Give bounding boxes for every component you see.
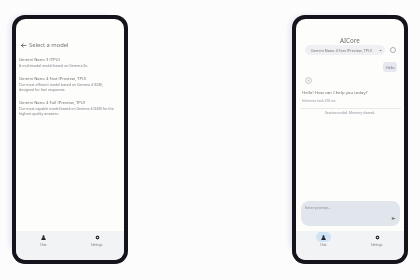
staticText: Hello! How can I help you today? (302, 89, 368, 95)
staticText: Inference took 418 ms (302, 99, 336, 103)
staticText: Gemini Nano 4 Fast (Preview, TPU) (19, 76, 87, 82)
button[interactable]: Settings (350, 231, 404, 260)
staticText: Chat (320, 243, 327, 247)
staticText: Session ended. Memory cleared. (325, 110, 376, 114)
staticText: AICore (340, 36, 360, 44)
staticText: Settings (91, 243, 103, 247)
staticText: Enter prompt… (305, 205, 332, 210)
staticText: Gemini Nano 3 (TPU) (19, 57, 60, 63)
button[interactable]: Account (390, 47, 396, 53)
button[interactable]: Chat (16, 231, 70, 260)
staticText: Gemini Nano 4 Fast (Preview, TPU) (311, 48, 372, 53)
button[interactable]: Gemini Nano 4 Full (Preview, TPU) (16, 96, 124, 120)
staticText: Chat (40, 243, 47, 247)
staticText: Select a model (29, 41, 69, 49)
button[interactable]: Enter prompt… (301, 201, 400, 226)
staticText: Our most efficient model based on Gemma … (19, 82, 119, 92)
staticText: Our most capable model based on Gemma 4 … (19, 106, 119, 116)
button[interactable]: Back (16, 39, 124, 51)
staticText: Gemini Nano 4 Full (Preview, TPU) (19, 100, 86, 106)
button[interactable]: Settings (70, 231, 124, 260)
button[interactable]: Gemini Nano 4 Fast (Preview, TPU) (16, 72, 124, 96)
staticText: Settings (371, 243, 383, 247)
button[interactable]: Send (391, 216, 396, 221)
button[interactable]: Gemini Nano 4 Fast (Preview, TPU) (305, 45, 385, 55)
staticText: A multimodal model based on Gemma 3n. (19, 63, 89, 68)
button[interactable]: Chat (296, 231, 350, 260)
button[interactable]: Back (19, 41, 27, 49)
button[interactable]: Gemini Nano 3 (TPU) (16, 53, 124, 72)
staticText: Hello (386, 65, 395, 70)
